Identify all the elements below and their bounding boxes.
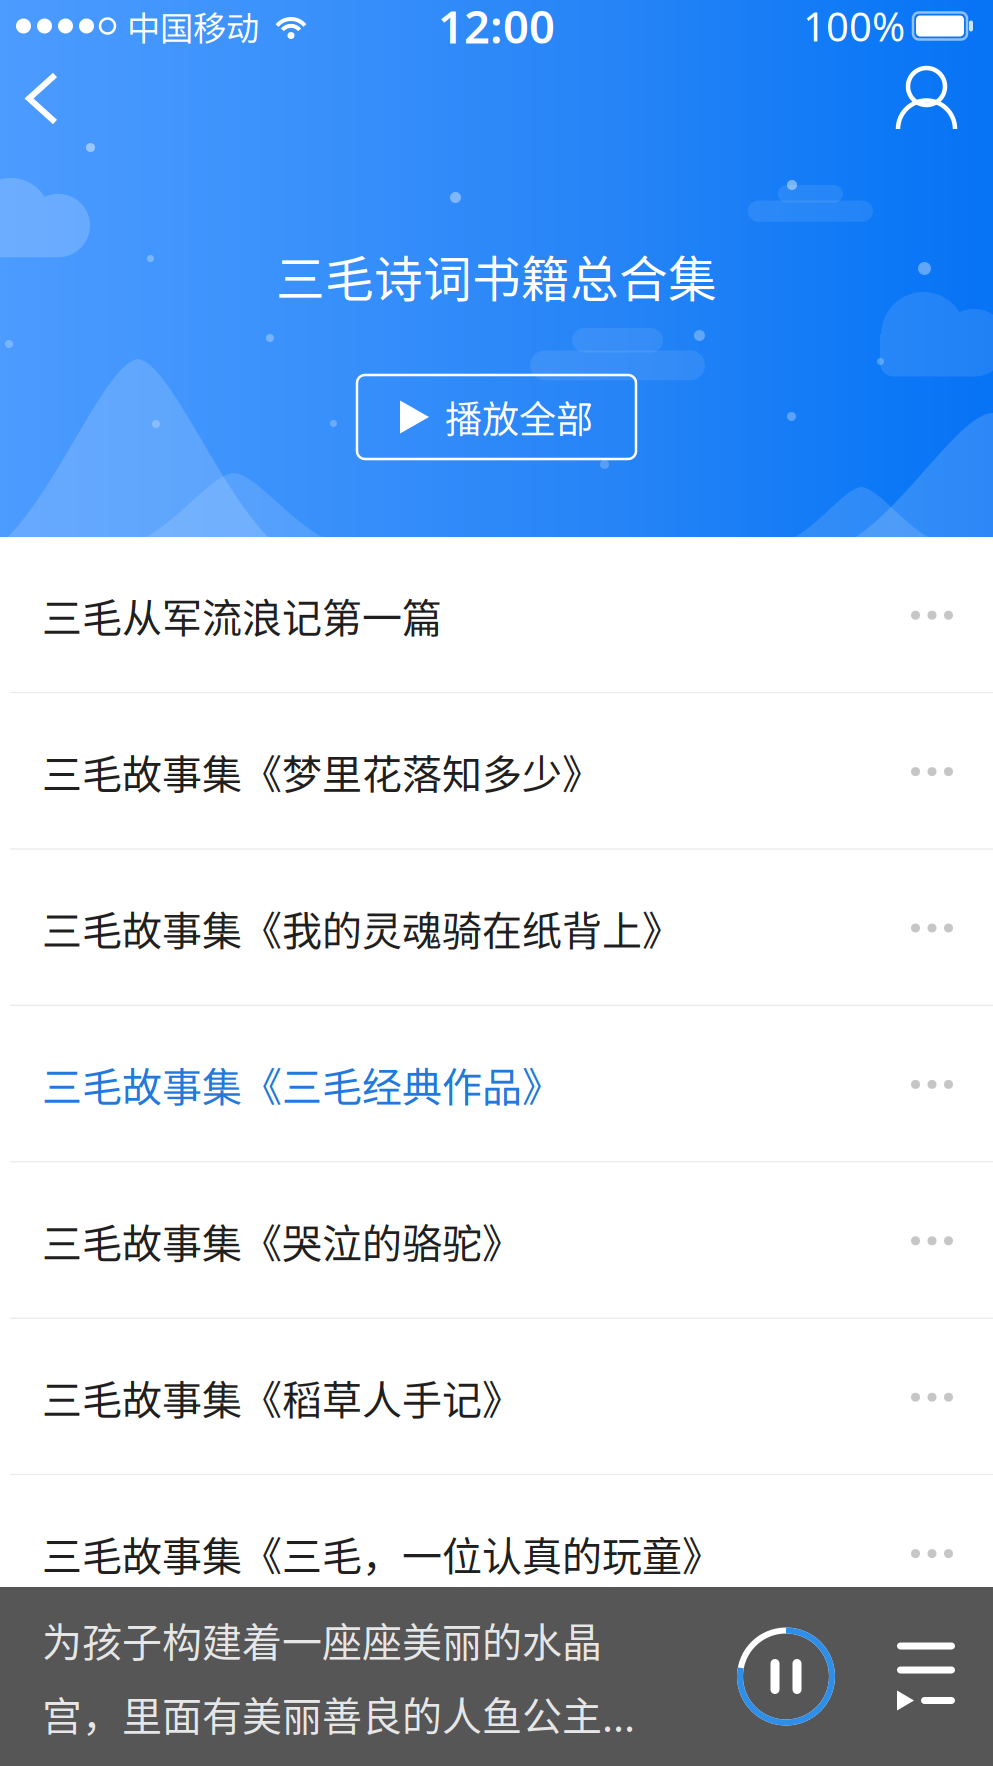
button[interactable]: 三毛故事集《我的灵魂骑在纸背上》 [0,850,993,1006]
staticText: 三毛故事集《梦里花落知多少》 [42,743,602,800]
staticText: 中国移动 [127,2,259,50]
staticText: 三毛故事集《三毛，一位认真的玩童》 [42,1525,722,1582]
button[interactable]: 三毛故事集《哭泣的骆驼》 [0,1163,993,1319]
button[interactable]: 三毛故事集《稻草人手记》 [0,1319,993,1475]
staticText: 三毛从军流浪记第一篇 [42,586,442,644]
staticText: 100% [803,0,905,52]
staticText: 三毛诗词书籍总合集 [276,240,717,311]
button[interactable]: Pause [727,1617,845,1735]
button[interactable]: 三毛故事集《三毛经典作品》 [0,1006,993,1163]
button[interactable]: 三毛故事集《三毛，一位认真的玩童》 [0,1475,993,1632]
staticText: 三毛故事集《我的灵魂骑在纸背上》 [42,899,682,957]
button[interactable]: 三毛从军流浪记第一篇 [0,537,993,693]
staticText: 三毛故事集《稻草人手记》 [42,1368,522,1426]
button[interactable]: Playlist [845,1614,993,1739]
staticText: 播放全部 [445,390,593,444]
staticText: 为孩子构建着一座座美丽的水晶 [42,1611,602,1668]
staticText: 12:00 [438,0,555,56]
staticText: 三毛故事集《哭泣的骆驼》 [42,1212,522,1270]
button[interactable]: Profile [858,52,993,145]
staticText: 宫，里面有美丽善良的人鱼公主... [42,1684,635,1742]
button[interactable]: 三毛故事集《梦里花落知多少》 [0,693,993,850]
button[interactable]: Back [0,53,100,144]
button[interactable]: 播放全部 [357,375,636,459]
staticText: 三毛故事集《三毛经典作品》 [42,1055,562,1113]
